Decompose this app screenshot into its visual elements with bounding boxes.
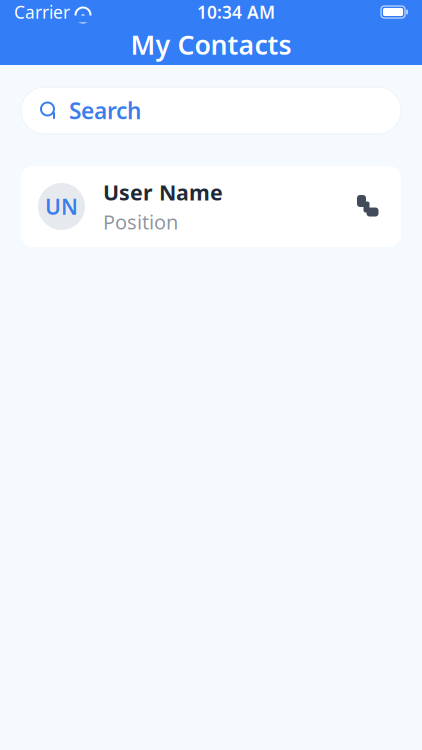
button[interactable]: Call User Name: [350, 189, 384, 223]
staticText: UN: [45, 192, 78, 221]
staticText: Carrier: [14, 0, 70, 23]
staticText: Position: [103, 208, 178, 235]
button[interactable]: Search: [21, 87, 401, 134]
staticText: Search: [69, 95, 141, 125]
staticText: User Name: [103, 178, 223, 206]
staticText: My Contacts: [130, 27, 291, 62]
button[interactable]: UN: [21, 166, 401, 247]
staticText: 10:34 AM: [197, 0, 275, 23]
